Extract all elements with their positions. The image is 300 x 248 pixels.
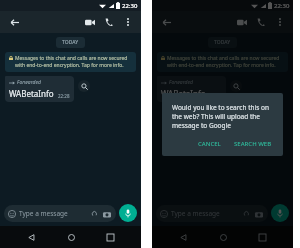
staticText: SEARCH WEB (234, 140, 272, 148)
staticText: 22:28 (58, 93, 70, 99)
button[interactable]: SEARCH WEB (229, 137, 277, 151)
button[interactable]: Back (6, 14, 22, 30)
staticText: WABetaInfo (9, 88, 54, 99)
button[interactable]: Call (253, 14, 269, 30)
button[interactable]: Type a message (156, 205, 268, 222)
button[interactable]: Messages to this chat and calls are now … (5, 52, 136, 72)
button[interactable]: Search message on web (78, 80, 90, 92)
button[interactable]: Home (62, 228, 80, 246)
button[interactable]: Video call (82, 14, 98, 30)
button[interactable]: Forwarded (5, 76, 74, 102)
staticText: TODAY (214, 39, 231, 46)
button[interactable]: Record voice message (271, 204, 289, 222)
button[interactable]: More options (273, 15, 287, 29)
button[interactable]: Camera (254, 209, 264, 219)
staticText: Type a message (19, 209, 68, 218)
button[interactable]: CANCEL (193, 137, 226, 151)
button[interactable]: Video call (234, 14, 250, 30)
button[interactable]: Forwarded (157, 76, 226, 102)
staticText: Forwarded (169, 79, 193, 86)
staticText: WABetaInfo (161, 88, 206, 99)
staticText: Type a message (171, 209, 220, 218)
staticText: 22:30 (122, 2, 138, 10)
button[interactable]: Search message on web (230, 80, 242, 92)
staticText: CANCEL (198, 140, 221, 148)
staticText: 22:30 (274, 2, 290, 10)
button[interactable]: Messages to this chat and calls are now … (157, 52, 288, 72)
button[interactable]: Attach (89, 209, 99, 219)
button[interactable]: Type a message (4, 205, 116, 222)
button[interactable]: Recent apps (253, 228, 271, 246)
button[interactable]: Recent apps (101, 228, 119, 246)
staticText: Forwarded (17, 79, 41, 86)
button[interactable]: Back (158, 14, 174, 30)
button[interactable]: Camera (102, 209, 112, 219)
button[interactable]: Back (174, 228, 192, 246)
button[interactable]: Record voice message (119, 204, 137, 222)
button[interactable]: Back (22, 228, 40, 246)
staticText: TODAY (62, 39, 79, 46)
button[interactable]: Attach (241, 209, 251, 219)
button[interactable]: Call (101, 14, 117, 30)
button[interactable]: More options (121, 15, 135, 29)
staticText: Messages to this chat and calls are now … (167, 55, 284, 69)
staticText: Would you like to search this on the web… (172, 103, 277, 130)
button[interactable]: Home (214, 228, 232, 246)
staticText: Messages to this chat and calls are now … (15, 55, 132, 69)
